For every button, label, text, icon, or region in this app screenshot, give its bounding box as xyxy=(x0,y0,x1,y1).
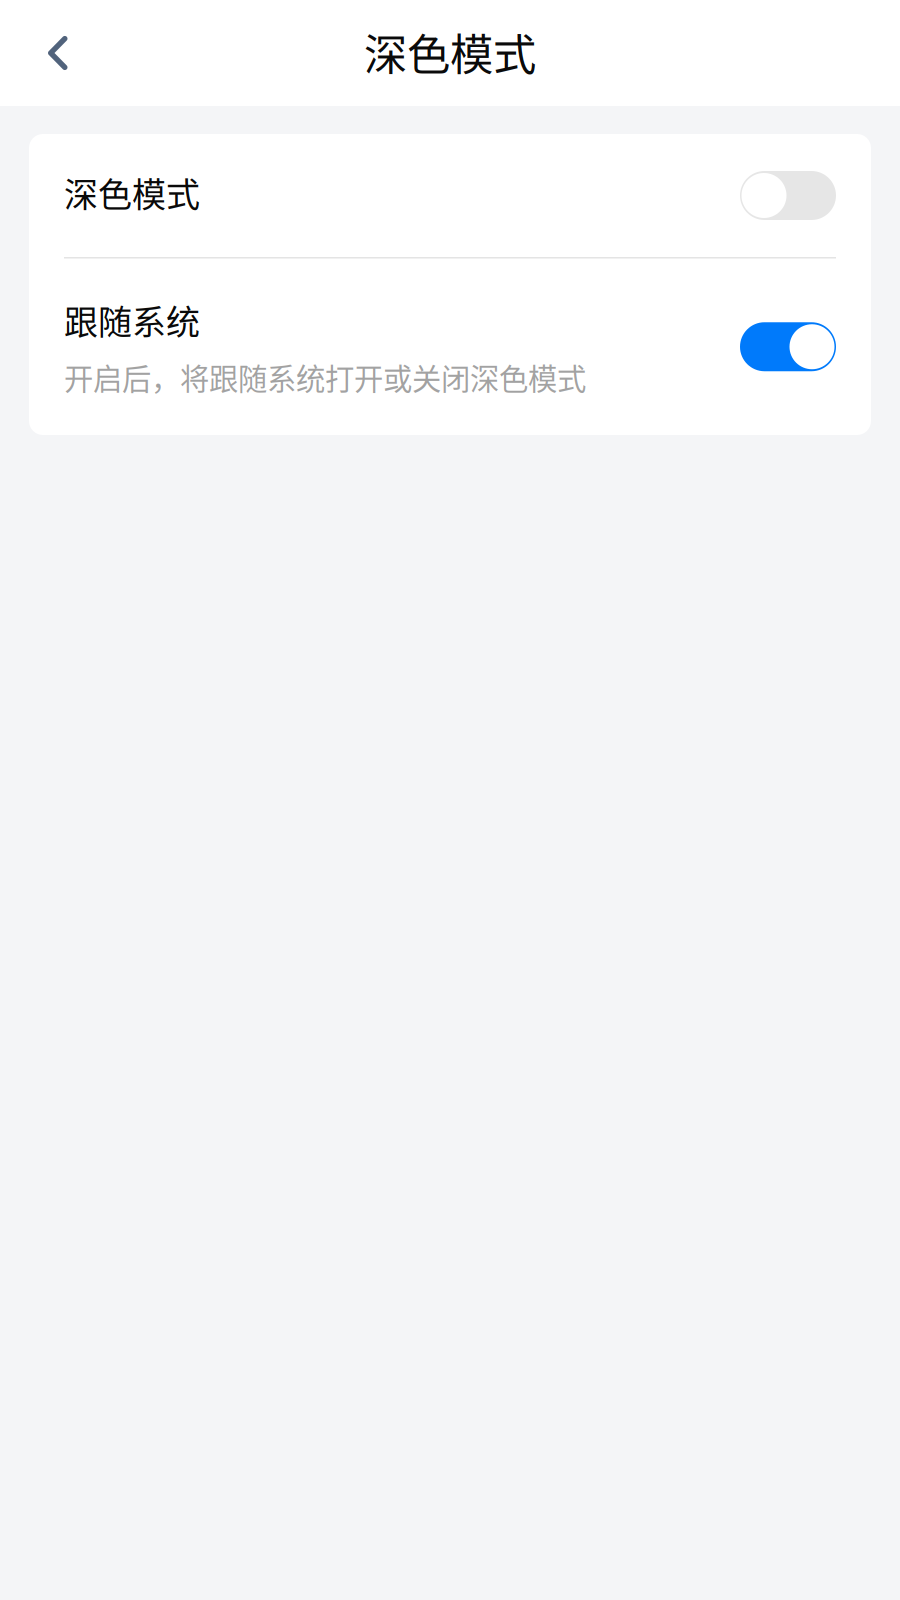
button[interactable]: 深色模式 xyxy=(29,134,871,257)
staticText: 深色模式 xyxy=(64,168,200,217)
button[interactable]: 跟随系统 xyxy=(29,258,871,435)
staticText: 深色模式 xyxy=(364,20,536,83)
staticText: 开启后，将跟随系统打开或关闭深色模式 xyxy=(64,356,586,398)
button[interactable]: 返回 xyxy=(0,0,118,106)
staticText: 跟随系统 xyxy=(64,295,200,345)
